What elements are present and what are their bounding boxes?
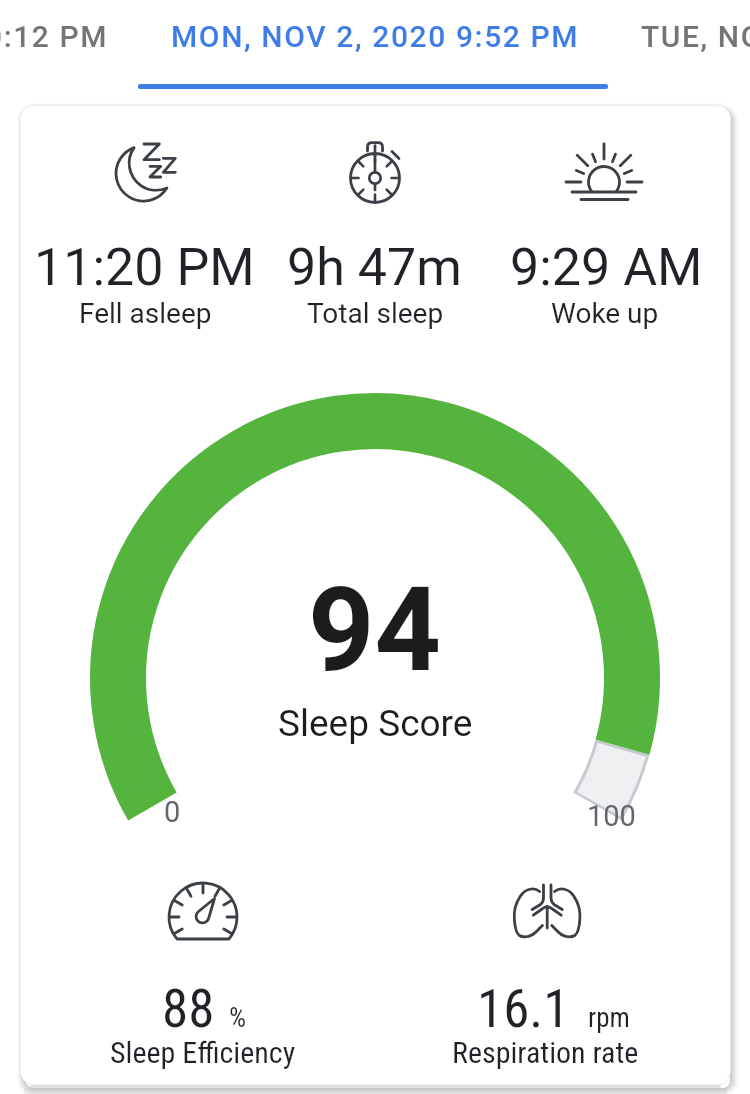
staticText: TUE, NOV 3 bbox=[641, 19, 750, 54]
staticText: Respiration rate bbox=[452, 1035, 639, 1070]
staticText: 100 bbox=[587, 799, 636, 833]
staticText: 0:12 PM bbox=[0, 19, 109, 54]
staticText: Sleep Efficiency bbox=[110, 1035, 296, 1070]
button[interactable]: TUE, NOV 3 bbox=[641, 19, 750, 54]
staticText: rpm bbox=[588, 1002, 630, 1034]
staticText: 0 bbox=[164, 795, 181, 829]
staticText: 94 bbox=[308, 562, 442, 698]
staticText: 9:29 AM bbox=[510, 237, 703, 298]
staticText: Woke up bbox=[551, 297, 659, 330]
button[interactable]: 0:12 PM bbox=[0, 19, 109, 54]
staticText: Total sleep bbox=[307, 297, 444, 330]
staticText: 11:20 PM bbox=[34, 237, 255, 298]
button[interactable]: MON, NOV 2, 2020 9:52 PM bbox=[171, 19, 580, 54]
staticText: 16.1 bbox=[477, 978, 570, 1040]
staticText: MON, NOV 2, 2020 9:52 PM bbox=[171, 19, 580, 54]
staticText: Sleep Score bbox=[278, 702, 473, 745]
staticText: 88 bbox=[162, 978, 215, 1040]
staticText: Fell asleep bbox=[79, 297, 212, 330]
staticText: 9h 47m bbox=[287, 237, 462, 298]
staticText: % bbox=[229, 1002, 247, 1034]
